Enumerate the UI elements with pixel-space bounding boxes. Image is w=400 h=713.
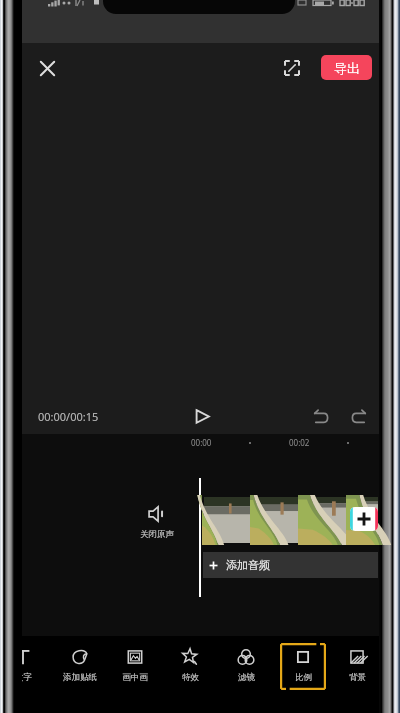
button[interactable]: Play: [188, 402, 216, 430]
staticText: 00:02: [289, 437, 310, 448]
button[interactable]: Add clip: [350, 507, 378, 531]
staticText: 00:00/00:15: [38, 409, 99, 424]
staticText: 添加贴纸: [63, 672, 97, 683]
button[interactable]: 比例: [280, 643, 326, 690]
button[interactable]: 添加音频: [203, 552, 378, 578]
button[interactable]: 关闭原声: [136, 505, 177, 540]
staticText: 特效: [182, 672, 199, 683]
staticText: 关闭原声: [140, 529, 174, 540]
staticText: 导出: [334, 60, 360, 76]
staticText: 滤镜: [238, 672, 255, 683]
staticText: 画中画: [122, 672, 148, 683]
button[interactable]: Undo: [306, 402, 334, 430]
button[interactable]: 滤镜: [223, 643, 269, 690]
button[interactable]: Fullscreen: [276, 52, 308, 84]
button[interactable]: 特效: [167, 643, 213, 690]
staticText: 添加音频: [226, 558, 270, 572]
button[interactable]: Close: [30, 51, 64, 85]
button[interactable]: 文字: [22, 643, 46, 690]
button[interactable]: 背景: [334, 643, 379, 690]
staticText: 背景: [349, 672, 366, 683]
staticText: 文字: [22, 672, 32, 683]
button[interactable]: 画中画: [112, 643, 158, 690]
button[interactable]: 导出: [321, 55, 372, 80]
staticText: 00:00: [191, 437, 212, 448]
button[interactable]: 添加贴纸: [57, 643, 103, 690]
button[interactable]: Redo: [345, 402, 373, 430]
staticText: 比例: [295, 672, 312, 683]
